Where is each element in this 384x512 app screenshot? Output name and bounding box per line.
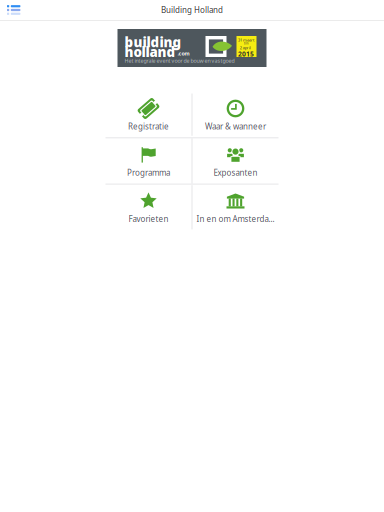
button[interactable]: In en om Amsterda... bbox=[192, 185, 278, 230]
staticText: Exposanten bbox=[213, 167, 257, 178]
staticText: Programma bbox=[127, 167, 170, 178]
button[interactable]: Programma bbox=[105, 138, 191, 184]
button[interactable]: Favorieten bbox=[105, 185, 191, 230]
button[interactable]: Exposanten bbox=[192, 138, 278, 184]
staticText: 2 april bbox=[240, 45, 251, 50]
staticText: holland bbox=[124, 43, 175, 61]
button[interactable]: Waar & wanneer bbox=[192, 92, 278, 137]
button[interactable]: Menu bbox=[0, 1, 25, 19]
staticText: .com bbox=[177, 50, 189, 57]
staticText: 2015 bbox=[238, 49, 254, 58]
staticText: In en om Amsterda... bbox=[196, 214, 274, 224]
staticText: building bbox=[124, 33, 181, 51]
staticText: t/m bbox=[244, 42, 248, 45]
staticText: Waar & wanneer bbox=[205, 121, 266, 132]
staticText: Registratie bbox=[128, 121, 169, 132]
staticText: 31 maart bbox=[238, 37, 254, 43]
button[interactable]: Registratie bbox=[105, 92, 191, 137]
staticText: Het integrale event voor de bouw en vast… bbox=[124, 57, 234, 64]
staticText: Favorieten bbox=[128, 214, 168, 224]
staticText: Building Holland bbox=[161, 5, 223, 15]
